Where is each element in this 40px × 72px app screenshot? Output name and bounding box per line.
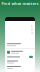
staticText: Edit [31,24,34,38]
staticText: Find what matters [1,1,38,6]
